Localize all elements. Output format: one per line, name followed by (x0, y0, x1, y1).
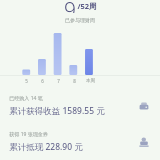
staticText: 6 (41, 78, 44, 84)
staticText: 7 (57, 78, 60, 84)
staticText: 8 (73, 78, 76, 84)
staticText: 累计获得收益 1589.55 元 (9, 105, 105, 117)
staticText: 5 (25, 78, 28, 84)
staticText: /52周 (77, 1, 97, 11)
button[interactable]: 5 (0, 30, 160, 86)
staticText: 9 (64, 0, 76, 13)
button[interactable]: 已经购入 14 笔 (0, 94, 160, 117)
button[interactable]: 获得 19 张现金券 (0, 130, 160, 153)
staticText: 已经购入 14 笔 (9, 95, 43, 102)
button[interactable]: 9 (0, 0, 160, 17)
other: 收益详情 (137, 99, 151, 113)
other: 现金券详情 (137, 135, 151, 149)
staticText: 本周 (86, 78, 95, 84)
staticText: 获得 19 张现金券 (9, 131, 48, 138)
staticText: 已参与理财周 (65, 17, 95, 23)
staticText: 累计抵现 228.90 元 (9, 141, 83, 153)
